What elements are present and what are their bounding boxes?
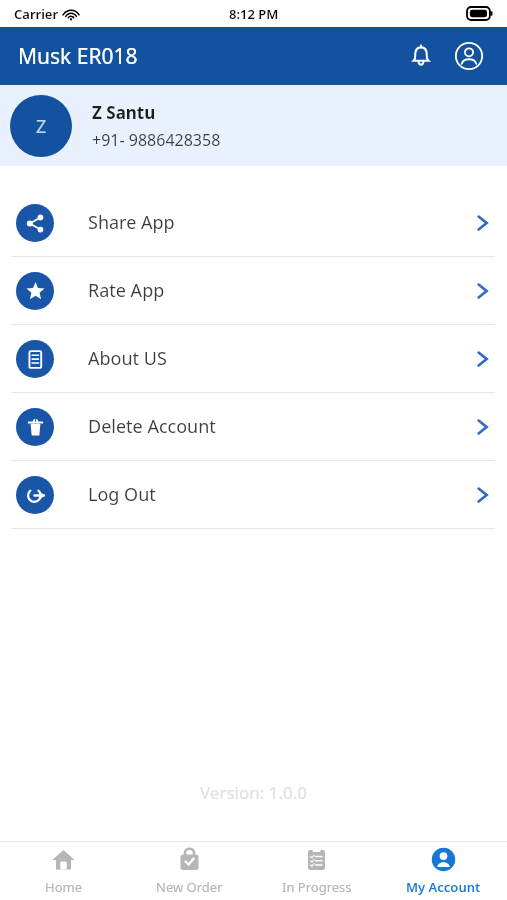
button[interactable]: Notifications [401,36,441,76]
button[interactable]: About US [0,325,507,392]
staticText: New Order [156,878,223,896]
staticText: Z Santu [92,101,156,124]
button[interactable]: Log Out [0,461,507,528]
staticText: Musk ER018 [18,42,138,71]
button[interactable]: In Progress [253,842,380,900]
button[interactable]: Delete Account [0,393,507,460]
staticText: In Progress [282,878,352,896]
staticText: Z [36,114,47,139]
staticText: Version: 1.0.0 [0,781,507,804]
staticText: Carrier [14,5,59,23]
staticText: Share App [88,210,175,235]
staticText: Delete Account [88,414,216,439]
staticText: Rate App [88,278,165,303]
button[interactable]: Home [0,842,126,900]
staticText: 8:12 PM [229,5,279,23]
button[interactable]: My Account [380,842,507,900]
staticText: About US [88,346,167,371]
button[interactable]: Profile [449,36,489,76]
staticText: Home [45,878,82,896]
staticText: My Account [406,878,481,896]
button[interactable]: New Order [126,842,253,900]
staticText: +91- 9886428358 [92,129,221,151]
staticText: Log Out [88,482,156,507]
button[interactable]: Share App [0,189,507,256]
button[interactable]: Rate App [0,257,507,324]
